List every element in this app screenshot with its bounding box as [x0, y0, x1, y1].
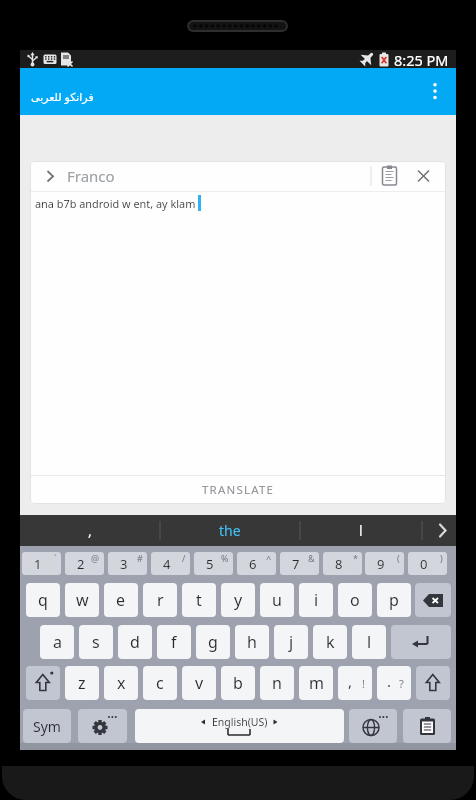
button[interactable]: d: [118, 625, 152, 659]
button[interactable]: [349, 709, 397, 743]
button[interactable]: 1: [22, 552, 61, 575]
staticText: o: [350, 589, 360, 611]
staticText: i: [314, 589, 319, 611]
button[interactable]: Sym: [23, 709, 71, 743]
button[interactable]: c: [143, 666, 177, 700]
staticText: y: [234, 589, 243, 611]
button[interactable]: 0: [408, 552, 447, 575]
staticText: a: [53, 631, 62, 653]
button[interactable]: j: [274, 625, 308, 659]
staticText: ): [440, 552, 443, 564]
button[interactable]: [415, 583, 451, 617]
staticText: u: [272, 589, 282, 611]
staticText: *: [353, 552, 358, 564]
staticText: m: [309, 672, 324, 694]
staticText: ?: [399, 676, 404, 691]
staticText: 0: [420, 555, 428, 573]
button[interactable]: [422, 515, 456, 546]
staticText: 5: [206, 555, 214, 573]
button[interactable]: g: [196, 625, 230, 659]
button[interactable]: the: [160, 515, 300, 546]
button[interactable]: r: [143, 583, 177, 617]
button[interactable]: [78, 709, 127, 743]
button[interactable]: o: [338, 583, 372, 617]
staticText: z: [78, 672, 86, 694]
staticText: x: [117, 672, 126, 694]
button[interactable]: u: [260, 583, 294, 617]
button[interactable]: x: [104, 666, 138, 700]
staticText: .: [387, 671, 392, 691]
button[interactable]: e: [104, 583, 138, 617]
button[interactable]: .: [377, 666, 411, 700]
button[interactable]: [403, 709, 451, 743]
staticText: j: [289, 631, 294, 653]
button[interactable]: i: [299, 583, 333, 617]
button[interactable]: y: [221, 583, 255, 617]
staticText: ana b7b android w ent, ay klam: [35, 196, 196, 211]
staticText: /: [182, 552, 186, 564]
button[interactable]: ,: [20, 515, 160, 546]
staticText: 8:25 PM: [394, 50, 449, 68]
staticText: #: [137, 552, 143, 564]
staticText: 6: [249, 555, 257, 573]
staticText: r: [157, 589, 164, 611]
button[interactable]: [26, 666, 60, 700]
button[interactable]: [391, 625, 451, 659]
staticText: فرانكو للعربى: [31, 89, 94, 104]
staticText: w: [76, 589, 89, 611]
button[interactable]: l: [352, 625, 386, 659]
staticText: q: [38, 589, 48, 611]
staticText: ^: [266, 552, 272, 564]
staticText: &: [308, 552, 315, 564]
button[interactable]: [416, 666, 450, 700]
staticText: p: [389, 589, 399, 611]
button[interactable]: n: [260, 666, 294, 700]
staticText: 2: [77, 555, 85, 573]
button[interactable]: 3: [108, 552, 147, 575]
staticText: 9: [377, 555, 385, 573]
button[interactable]: v: [182, 666, 216, 700]
staticText: TRANSLATE: [202, 482, 275, 498]
button[interactable]: a: [40, 625, 74, 659]
button[interactable]: 7: [280, 552, 319, 575]
button[interactable]: b: [221, 666, 255, 700]
staticText: k: [326, 631, 335, 653]
staticText: e: [116, 589, 126, 611]
button[interactable]: t: [182, 583, 216, 617]
staticText: 8: [335, 555, 343, 573]
button[interactable]: s: [79, 625, 113, 659]
button[interactable]: 9: [365, 552, 404, 575]
button[interactable]: [423, 79, 447, 104]
button[interactable]: 6: [237, 552, 276, 575]
button[interactable]: English(US): [135, 709, 344, 743]
staticText: !: [362, 676, 365, 691]
staticText: c: [156, 672, 164, 694]
button[interactable]: f: [157, 625, 191, 659]
staticText: v: [195, 672, 204, 694]
button[interactable]: 2: [65, 552, 104, 575]
staticText: ,: [88, 521, 92, 540]
staticText: %: [221, 552, 229, 564]
staticText: s: [92, 631, 100, 653]
staticText: t: [196, 589, 202, 611]
button[interactable]: q: [26, 583, 60, 617]
staticText: 4: [163, 555, 171, 573]
button[interactable]: m: [299, 666, 333, 700]
button[interactable]: h: [235, 625, 269, 659]
staticText: Franco: [67, 166, 115, 186]
button[interactable]: l: [300, 515, 422, 546]
button[interactable]: z: [65, 666, 99, 700]
staticText: (: [397, 552, 400, 564]
button[interactable]: Franco: [30, 161, 446, 191]
staticText: `: [54, 552, 57, 564]
button[interactable]: p: [377, 583, 411, 617]
button[interactable]: TRANSLATE: [30, 476, 446, 504]
button[interactable]: 5: [194, 552, 233, 575]
staticText: d: [130, 631, 140, 653]
button[interactable]: 8: [323, 552, 362, 575]
staticText: b: [233, 672, 243, 694]
button[interactable]: k: [313, 625, 347, 659]
button[interactable]: 4: [151, 552, 190, 575]
button[interactable]: w: [65, 583, 99, 617]
button[interactable]: ,: [338, 666, 372, 700]
